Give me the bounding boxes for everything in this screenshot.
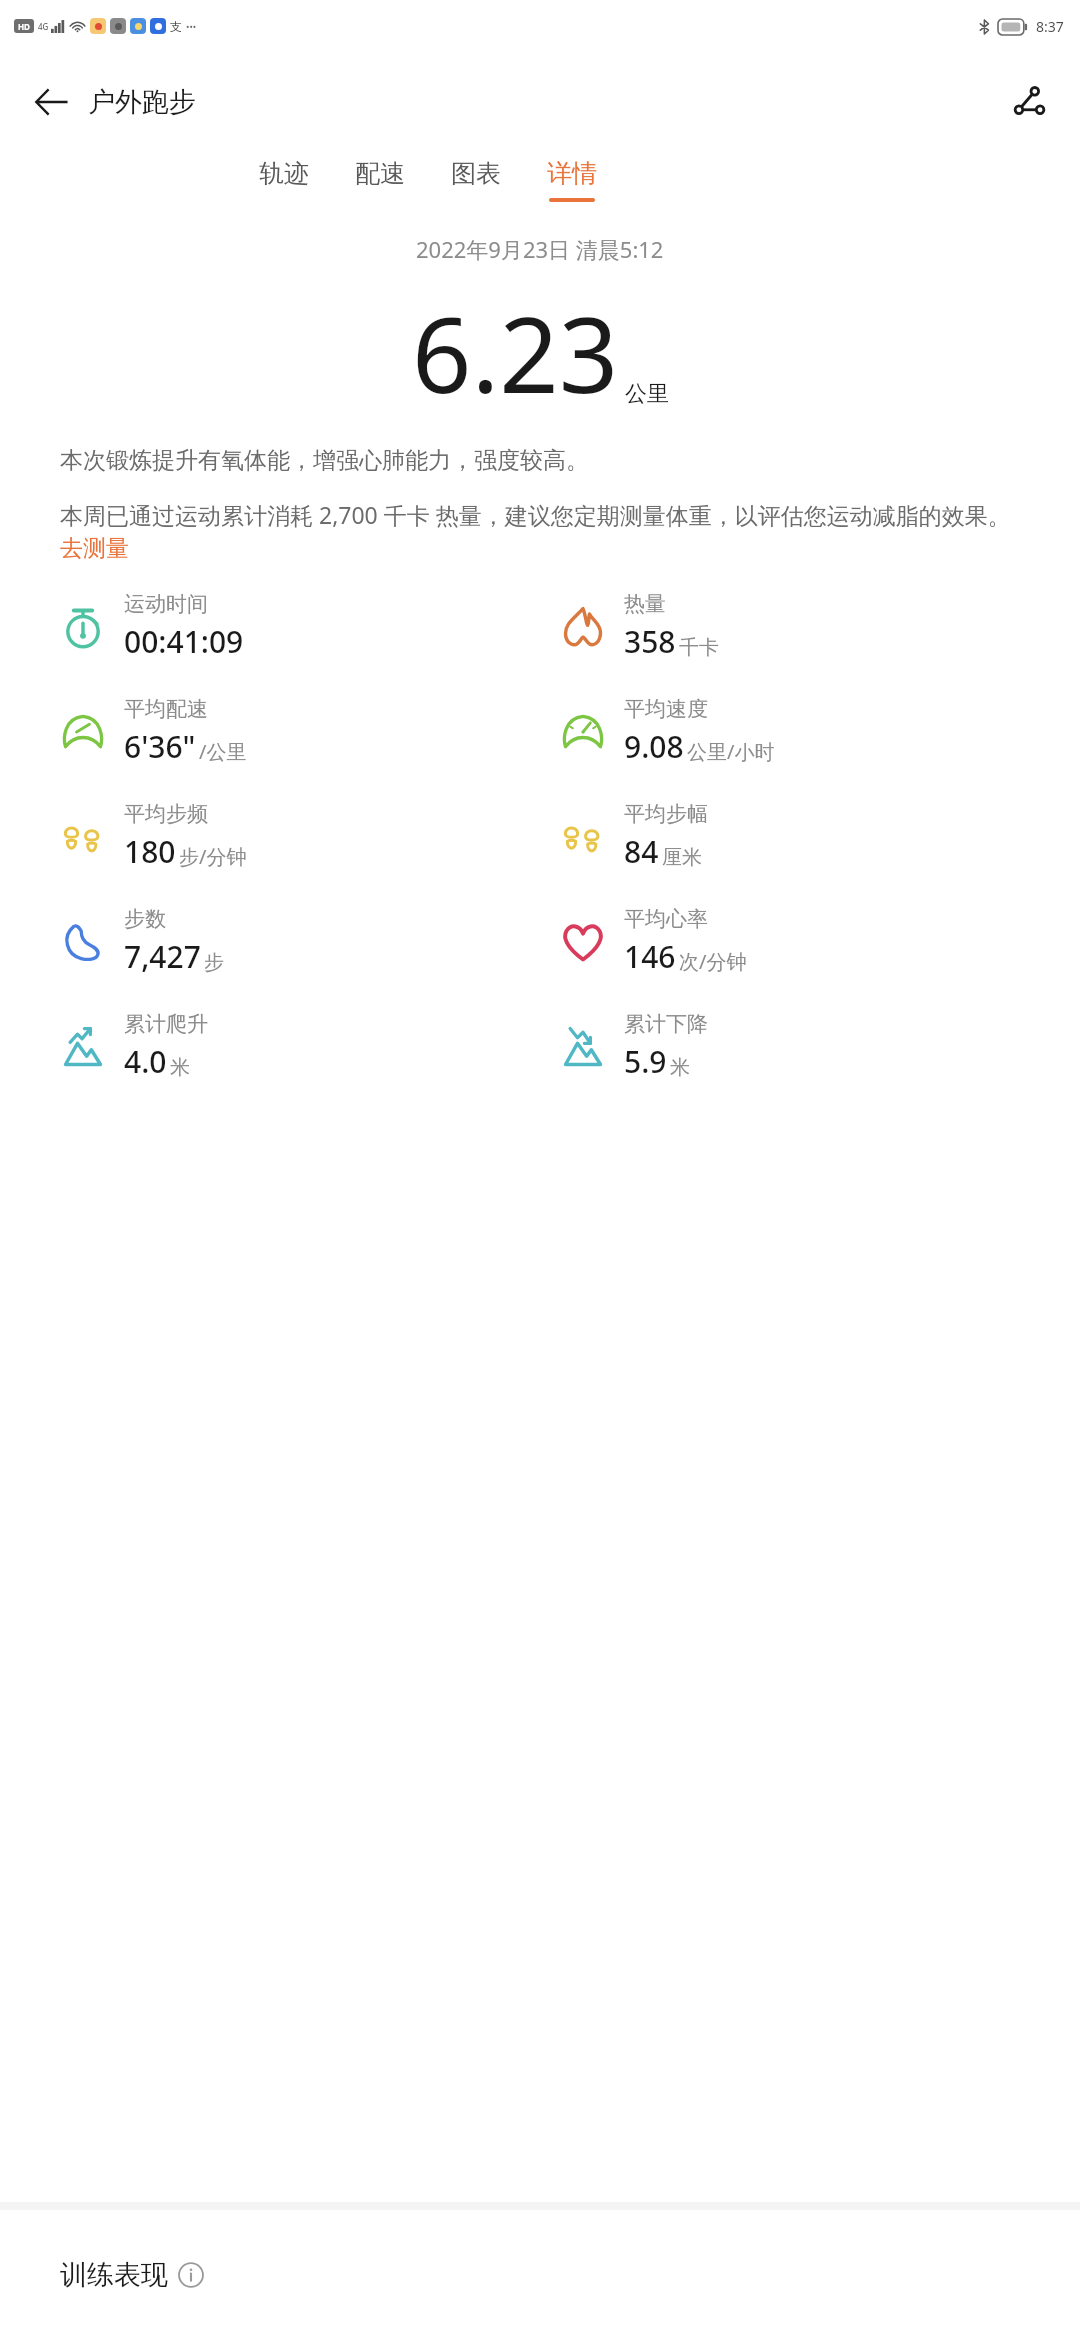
button[interactable]: 配速	[351, 152, 409, 208]
staticText: 米	[170, 1055, 190, 1080]
staticText: 累计爬升	[124, 1011, 208, 1037]
staticText: 去测量	[60, 534, 129, 563]
button[interactable]: 训练表现	[60, 2258, 204, 2292]
staticText: 支	[170, 19, 182, 34]
staticText: 84	[624, 831, 659, 872]
staticText: 9.08	[624, 726, 684, 767]
button[interactable]: 平均配速	[56, 696, 540, 767]
button[interactable]: 轨迹	[255, 152, 313, 208]
staticText: 本周已通过运动累计消耗 2,700 千卡 热量，建议您定期测量体重，以评估您运动…	[60, 499, 1011, 530]
button[interactable]: 图表	[447, 152, 505, 208]
button[interactable]: 运动时间	[56, 591, 540, 662]
staticText: HD	[18, 21, 30, 32]
staticText: 6'36"	[124, 726, 196, 767]
staticText: /公里	[199, 738, 247, 765]
button[interactable]: 累计爬升	[56, 1011, 540, 1082]
staticText: 7,427	[124, 936, 201, 977]
staticText: 配速	[355, 158, 405, 189]
button[interactable]: 详情	[543, 152, 601, 208]
staticText: 米	[670, 1055, 690, 1080]
staticText: 户外跑步	[88, 85, 196, 119]
staticText: 步	[204, 950, 224, 975]
staticText: 146	[624, 936, 676, 977]
staticText: 步数	[124, 906, 166, 932]
button[interactable]: 热量	[556, 591, 1080, 662]
button[interactable]: 去测量	[60, 534, 129, 563]
button[interactable]: 平均速度	[556, 696, 1080, 767]
staticText: 00:41:09	[124, 621, 244, 662]
staticText: 平均配速	[124, 696, 208, 722]
staticText: 平均心率	[624, 906, 708, 932]
staticText: 热量	[624, 591, 666, 617]
staticText: 次/分钟	[679, 948, 747, 975]
staticText: 358	[624, 621, 676, 662]
staticText: 步/分钟	[179, 843, 247, 870]
button[interactable]: 步数	[56, 906, 540, 977]
staticText: 6.23	[412, 282, 619, 424]
button[interactable]: Share	[1002, 73, 1060, 131]
staticText: 4G	[38, 21, 49, 32]
staticText: •••	[186, 20, 197, 32]
staticText: 公里/小时	[687, 738, 775, 765]
staticText: 本次锻炼提升有氧体能，增强心肺能力，强度较高。	[60, 446, 589, 475]
staticText: 8:37	[1036, 17, 1064, 36]
staticText: 5.9	[624, 1041, 667, 1082]
button[interactable]: Back	[22, 73, 80, 131]
staticText: 4.0	[124, 1041, 167, 1082]
staticText: 图表	[451, 158, 501, 189]
staticText: 厘米	[662, 845, 702, 870]
staticText: 训练表现	[60, 2258, 168, 2292]
staticText: 轨迹	[259, 158, 309, 189]
staticText: 详情	[547, 158, 597, 189]
staticText: 累计下降	[624, 1011, 708, 1037]
staticText: 平均步幅	[624, 801, 708, 827]
staticText: 平均步频	[124, 801, 208, 827]
button[interactable]: 累计下降	[556, 1011, 1080, 1082]
button[interactable]: 平均步频	[56, 801, 540, 872]
staticText: 公里	[625, 380, 669, 408]
staticText: 2022年9月23日 清晨5:12	[416, 234, 664, 264]
button[interactable]: 平均心率	[556, 906, 1080, 977]
staticText: 180	[124, 831, 176, 872]
staticText: 运动时间	[124, 591, 208, 617]
staticText: 平均速度	[624, 696, 708, 722]
staticText: 千卡	[679, 635, 719, 660]
button[interactable]: 平均步幅	[556, 801, 1080, 872]
